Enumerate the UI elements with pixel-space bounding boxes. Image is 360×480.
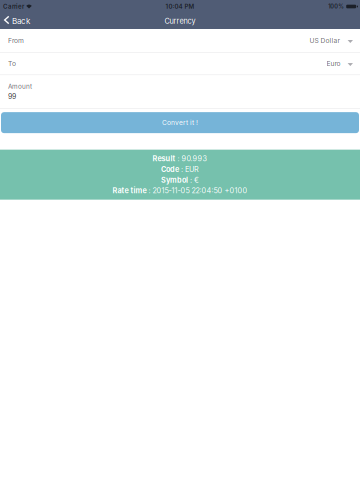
button[interactable]: Amount [0, 75, 360, 108]
staticText: 2015-11-05 22:04:50 +0100 [152, 186, 247, 195]
staticText: To [8, 60, 16, 67]
staticText: : [175, 154, 181, 163]
button[interactable]: Back [0, 13, 36, 29]
staticText: Convert it ! [162, 119, 198, 127]
staticText: 99 [8, 92, 16, 100]
staticText: 10:04 PM [165, 3, 194, 10]
staticText: Amount [8, 83, 32, 90]
staticText: Euro [327, 60, 341, 67]
staticText: 100% [328, 3, 344, 10]
staticText: 90.993 [181, 154, 207, 163]
staticText: US Dollar [310, 37, 341, 44]
staticText: Back [12, 16, 30, 26]
staticText: Result [152, 154, 175, 163]
staticText: Rate time [112, 186, 146, 195]
staticText: € [194, 176, 199, 184]
staticText: Symbol [161, 176, 188, 184]
staticText: EUR [185, 165, 199, 174]
staticText: Currency [164, 17, 195, 25]
staticText: : [146, 186, 152, 195]
button[interactable]: Convert it ! [1, 112, 359, 133]
staticText: : [188, 176, 194, 184]
staticText: : [179, 165, 185, 174]
staticText: Carrier [3, 3, 24, 10]
staticText: From [8, 37, 24, 44]
staticText: Code [161, 165, 179, 174]
button[interactable]: From [0, 29, 360, 52]
button[interactable]: To [0, 52, 360, 74]
